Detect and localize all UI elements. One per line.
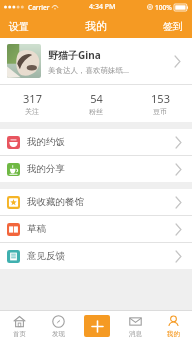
- staticText: 我的: [85, 19, 107, 33]
- button[interactable]: 我的分享: [0, 156, 192, 182]
- button[interactable]: 设置: [0, 16, 38, 37]
- staticText: 野猫子Gina: [48, 48, 101, 62]
- button[interactable]: 我的约饭: [0, 129, 192, 155]
- staticText: Carrier: [28, 3, 50, 12]
- staticText: 我的分享: [27, 163, 65, 175]
- staticText: 签到: [163, 20, 183, 33]
- staticText: 消息: [129, 330, 142, 338]
- staticText: 草稿: [27, 223, 46, 235]
- button[interactable]: Add: [78, 311, 116, 341]
- button[interactable]: 野猫子Gina: [0, 38, 192, 84]
- staticText: 美食达人，喜欢萌妹纸...: [48, 65, 130, 75]
- staticText: 153: [151, 91, 170, 106]
- button[interactable]: 意见反馈: [0, 243, 192, 269]
- staticText: 关注: [25, 107, 39, 116]
- staticText: 首页: [13, 330, 26, 338]
- staticText: 粉丝: [89, 107, 103, 116]
- button[interactable]: 54: [64, 90, 128, 117]
- button[interactable]: 我收藏的餐馆: [0, 189, 192, 215]
- button[interactable]: 发现: [39, 311, 78, 341]
- staticText: 我收藏的餐馆: [27, 196, 84, 208]
- staticText: 我的: [167, 330, 180, 338]
- staticText: 发现: [52, 330, 65, 338]
- button[interactable]: 草稿: [0, 216, 192, 242]
- staticText: 我的约饭: [27, 136, 65, 148]
- button[interactable]: 首页: [0, 311, 39, 341]
- button[interactable]: 消息: [116, 311, 154, 341]
- staticText: 317: [23, 91, 42, 106]
- button[interactable]: 317: [0, 90, 64, 117]
- button[interactable]: 153: [128, 90, 192, 117]
- button[interactable]: 我的: [154, 311, 192, 341]
- staticText: 意见反馈: [27, 250, 65, 262]
- staticText: 4:34 PM: [89, 2, 116, 12]
- staticText: 豆币: [153, 107, 167, 116]
- staticText: 54: [90, 91, 103, 106]
- button[interactable]: 签到: [154, 16, 192, 37]
- staticText: 100%: [155, 3, 172, 12]
- staticText: 设置: [9, 20, 29, 33]
